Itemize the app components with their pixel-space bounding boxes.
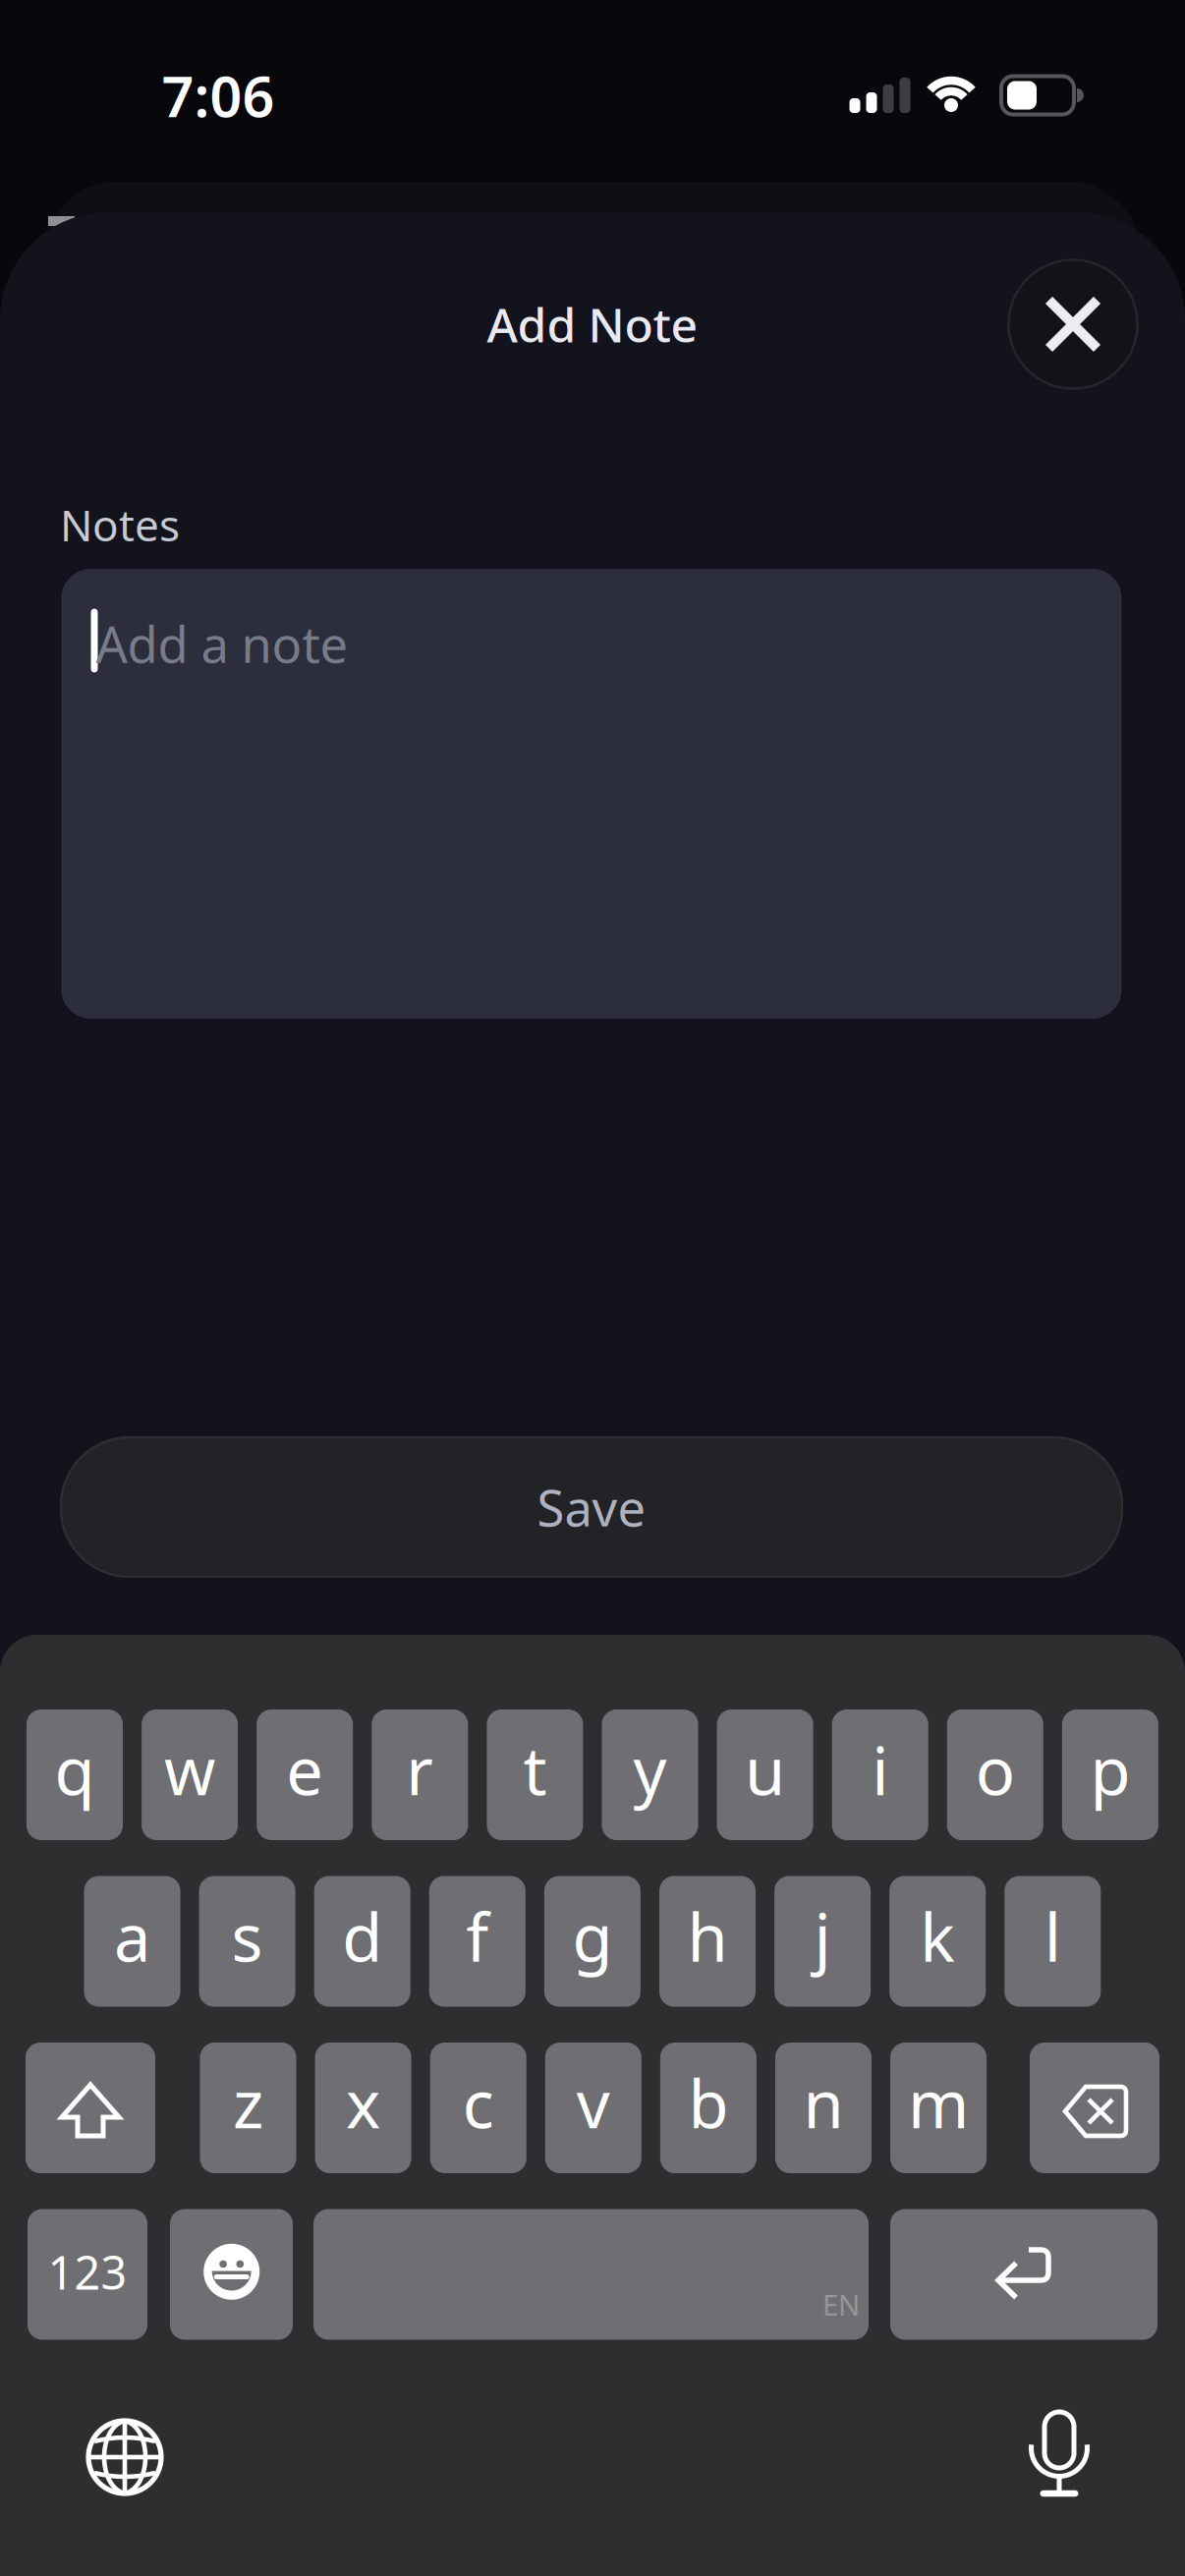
- staticText: o: [976, 1726, 1015, 1813]
- staticText: v: [577, 2059, 610, 2146]
- button[interactable]: q: [27, 1709, 123, 1840]
- button[interactable]: j: [774, 1876, 871, 2007]
- button[interactable]: p: [1062, 1709, 1158, 1840]
- button[interactable]: [1030, 2043, 1159, 2173]
- staticText: Add a note: [96, 610, 348, 677]
- button[interactable]: d: [314, 1876, 410, 2007]
- staticText: t: [523, 1726, 547, 1813]
- staticText: 7:06: [162, 58, 275, 133]
- staticText: Add Note: [487, 293, 698, 355]
- staticText: q: [55, 1726, 95, 1813]
- button[interactable]: [85, 2418, 164, 2496]
- staticText: 123: [48, 2241, 127, 2302]
- staticText: Save: [537, 1474, 646, 1540]
- button[interactable]: [1009, 260, 1137, 389]
- button[interactable]: 123: [28, 2209, 147, 2340]
- button[interactable]: o: [947, 1709, 1043, 1840]
- staticText: i: [872, 1726, 888, 1813]
- button[interactable]: u: [717, 1709, 813, 1840]
- staticText: d: [342, 1893, 382, 1980]
- staticText: c: [463, 2059, 494, 2146]
- staticText: b: [688, 2059, 728, 2146]
- staticText: x: [346, 2059, 380, 2146]
- staticText: w: [164, 1726, 215, 1813]
- button[interactable]: s: [199, 1876, 295, 2007]
- button[interactable]: [890, 2209, 1157, 2340]
- button[interactable]: b: [660, 2043, 756, 2173]
- button[interactable]: r: [372, 1709, 468, 1840]
- button[interactable]: k: [889, 1876, 986, 2007]
- button[interactable]: m: [890, 2043, 987, 2173]
- staticText: m: [908, 2059, 969, 2146]
- staticText: z: [233, 2059, 263, 2146]
- button[interactable]: w: [142, 1709, 238, 1840]
- button[interactable]: t: [487, 1709, 583, 1840]
- button[interactable]: l: [1004, 1876, 1101, 2007]
- staticText: f: [466, 1893, 489, 1980]
- button[interactable]: n: [775, 2043, 872, 2173]
- staticText: a: [114, 1893, 150, 1980]
- button[interactable]: z: [200, 2043, 296, 2173]
- staticText: r: [406, 1726, 434, 1813]
- button[interactable]: e: [257, 1709, 353, 1840]
- button[interactable]: EN: [313, 2209, 869, 2340]
- button[interactable]: Add a note: [61, 569, 1122, 1019]
- staticText: l: [1044, 1893, 1061, 1980]
- button[interactable]: [1016, 2400, 1102, 2509]
- staticText: p: [1090, 1726, 1130, 1813]
- button[interactable]: v: [545, 2043, 641, 2173]
- button[interactable]: a: [84, 1876, 180, 2007]
- button[interactable]: g: [544, 1876, 641, 2007]
- button[interactable]: h: [659, 1876, 756, 2007]
- staticText: Notes: [60, 496, 180, 553]
- staticText: j: [814, 1893, 831, 1980]
- staticText: n: [803, 2059, 844, 2146]
- staticText: y: [633, 1726, 667, 1813]
- staticText: k: [920, 1893, 955, 1980]
- staticText: h: [687, 1893, 728, 1980]
- button[interactable]: f: [429, 1876, 525, 2007]
- button[interactable]: [26, 2043, 155, 2173]
- button[interactable]: y: [602, 1709, 698, 1840]
- button[interactable]: Save: [60, 1436, 1123, 1578]
- staticText: s: [231, 1893, 263, 1980]
- button[interactable]: [170, 2209, 293, 2340]
- staticText: EN: [822, 2285, 860, 2324]
- button[interactable]: i: [832, 1709, 928, 1840]
- staticText: u: [745, 1726, 785, 1813]
- button[interactable]: x: [315, 2043, 411, 2173]
- button[interactable]: c: [430, 2043, 526, 2173]
- staticText: g: [572, 1893, 613, 1980]
- staticText: e: [286, 1726, 323, 1813]
